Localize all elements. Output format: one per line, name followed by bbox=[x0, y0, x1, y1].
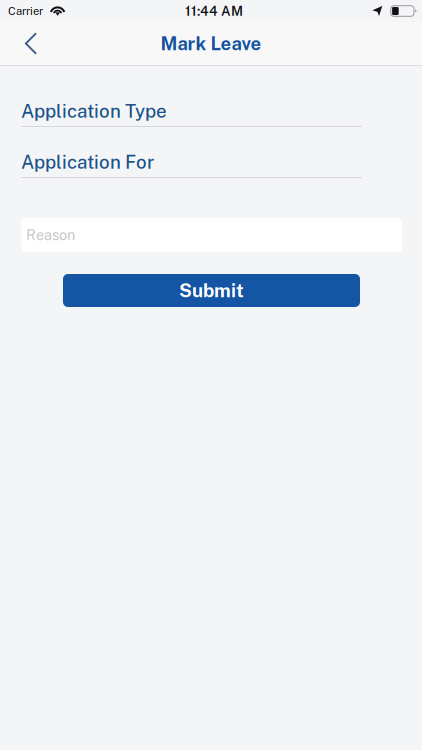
staticText: Mark Leave bbox=[160, 33, 261, 54]
staticText: Application For bbox=[21, 151, 154, 173]
button[interactable]: Reason bbox=[21, 218, 402, 252]
staticText: Submit bbox=[179, 279, 244, 301]
staticText: Reason bbox=[26, 226, 75, 243]
staticText: 11:44 AM bbox=[185, 3, 243, 19]
staticText: Carrier bbox=[8, 4, 43, 18]
button[interactable]: Application Type bbox=[21, 102, 362, 127]
staticText: Application Type bbox=[21, 100, 167, 122]
button[interactable]: Application For bbox=[21, 153, 362, 178]
button[interactable]: Back bbox=[9, 22, 53, 65]
button[interactable]: Submit bbox=[63, 274, 360, 307]
